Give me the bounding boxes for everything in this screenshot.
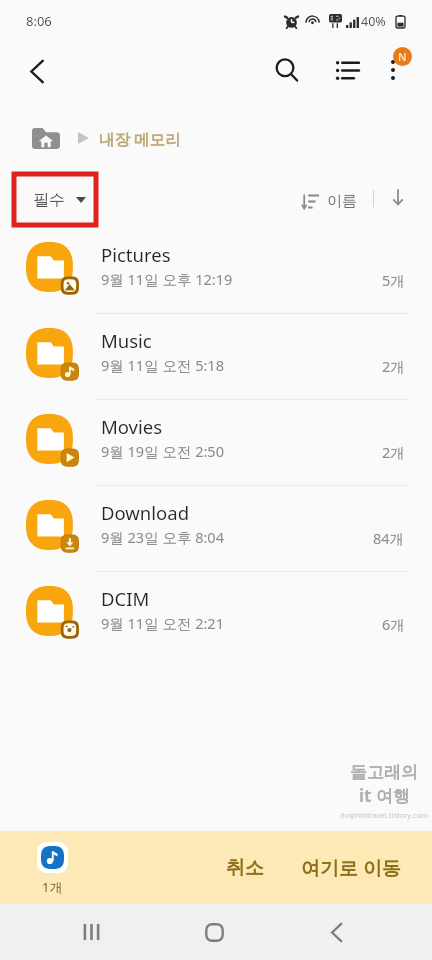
staticText: 9월 19일 오전 2:50 (101, 441, 224, 461)
button[interactable]: Back (14, 48, 60, 94)
button[interactable]: Home (186, 904, 242, 960)
staticText: 5개 (382, 270, 405, 290)
staticText: 돌고래의 (350, 762, 418, 783)
button[interactable]: Back (308, 904, 364, 960)
staticText: Pictures (101, 242, 171, 267)
staticText: 84개 (373, 528, 405, 548)
button[interactable]: 취소 (215, 845, 275, 891)
staticText: DCIM (101, 586, 150, 611)
button[interactable] (37, 842, 68, 873)
staticText: 9월 11일 오전 2:21 (101, 613, 224, 633)
button[interactable]: Music (0, 314, 432, 400)
staticText: 이름 (327, 192, 357, 211)
staticText: it 여행 (359, 784, 410, 807)
button[interactable]: Download (0, 486, 432, 572)
staticText: 2개 (382, 356, 405, 376)
staticText: 9월 23일 오후 8:04 (101, 527, 224, 547)
button[interactable]: More options (370, 47, 416, 93)
staticText: 여기로 이동 (301, 855, 401, 881)
button[interactable]: View as list (324, 47, 370, 93)
staticText: 9월 11일 오후 12:19 (101, 269, 233, 289)
staticText: N (398, 49, 407, 64)
button[interactable]: Pictures (0, 228, 432, 314)
staticText: 필수 (33, 190, 65, 210)
staticText: 1개 (42, 878, 63, 896)
staticText: Music (101, 328, 152, 353)
button[interactable]: Movies (0, 400, 432, 486)
button[interactable]: Recent apps (63, 904, 119, 960)
staticText: 내장 메모리 (99, 128, 181, 149)
staticText: dolphintravel.tistory.com (340, 810, 429, 820)
button[interactable]: DCIM (0, 572, 432, 658)
staticText: 취소 (226, 856, 264, 880)
staticText: Download (101, 500, 190, 525)
staticText: 40% (361, 13, 386, 30)
button[interactable]: 여기로 이동 (290, 844, 412, 892)
button[interactable]: Search (264, 47, 310, 93)
staticText: Movies (101, 414, 163, 439)
button[interactable]: 필수 (25, 185, 94, 215)
button[interactable]: 이름 (302, 187, 357, 216)
staticText: 9월 11일 오전 5:18 (101, 355, 224, 375)
staticText: 6개 (382, 614, 405, 634)
button[interactable]: Sort order (382, 181, 414, 213)
staticText: 8:06 (26, 12, 52, 30)
staticText: 2개 (382, 442, 405, 462)
